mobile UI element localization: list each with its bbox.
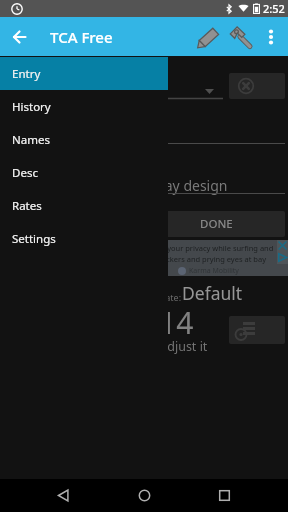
staticText: 0.14 (134, 302, 194, 343)
staticText: Names (12, 132, 50, 148)
button[interactable]: Clear (229, 73, 285, 99)
button[interactable]: Back (6, 24, 32, 50)
button[interactable]: Back (47, 479, 80, 512)
staticText: DONE (200, 216, 233, 232)
staticText: Desc (12, 165, 38, 181)
staticText: stop hackers and prying eyes at bay (140, 254, 266, 264)
staticText: Display design (132, 176, 228, 195)
button[interactable]: Entry (0, 57, 168, 90)
button[interactable]: Protect your privacy while surfing and (0, 240, 288, 276)
staticText: Settings (12, 231, 56, 247)
staticText: Protect your privacy while surfing and (140, 243, 274, 253)
button[interactable]: Settings (0, 222, 168, 255)
button[interactable]: More options (258, 24, 284, 50)
staticText: Default (182, 281, 243, 305)
button[interactable]: Recents (208, 479, 241, 512)
staticText: 2:52 (263, 1, 285, 16)
staticText: Default (20, 82, 62, 98)
button[interactable]: Names (0, 123, 168, 156)
button[interactable]: History (0, 90, 168, 123)
staticText: Karma Mobility (189, 266, 239, 276)
staticText: Current rate: (127, 291, 182, 303)
button[interactable]: History (229, 316, 285, 344)
staticText: TCA Free (50, 27, 113, 47)
button[interactable]: Edit (197, 26, 219, 48)
staticText: History (12, 99, 51, 115)
button[interactable]: Tools (229, 26, 251, 48)
button[interactable]: Close ad (277, 240, 288, 251)
button[interactable]: Desc (0, 156, 168, 189)
button[interactable]: Home (128, 479, 161, 512)
staticText: Tap to adjust it (121, 338, 208, 355)
staticText: Rates (12, 198, 42, 214)
button[interactable]: DONE (147, 211, 285, 237)
staticText: Entry (12, 66, 41, 82)
button[interactable]: Rates (0, 189, 168, 222)
